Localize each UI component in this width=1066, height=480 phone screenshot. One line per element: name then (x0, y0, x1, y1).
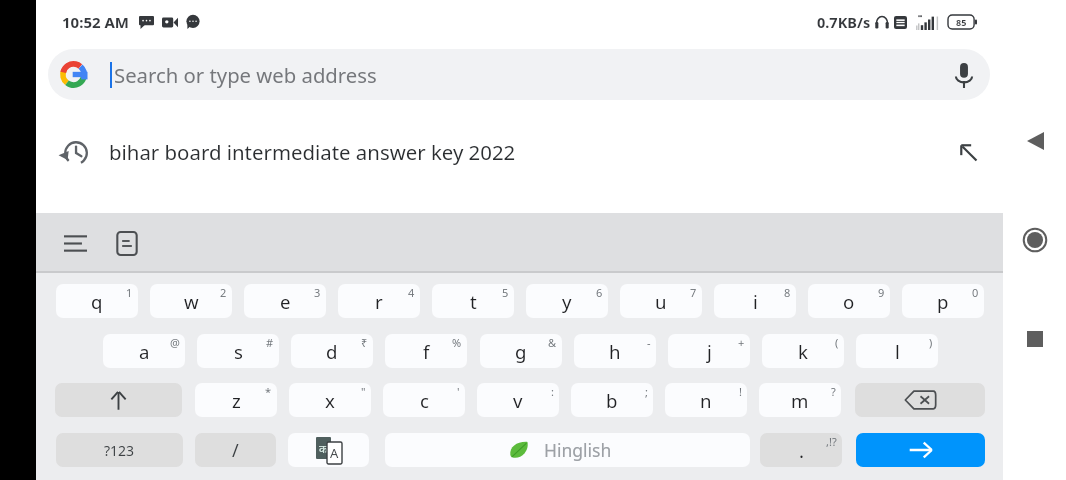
staticText: 9 (878, 285, 885, 300)
button[interactable]: Use this suggestion (951, 135, 985, 169)
button[interactable]: j (668, 334, 750, 368)
button[interactable]: x (289, 383, 371, 417)
staticText: h (609, 339, 621, 364)
button[interactable]: p (902, 284, 984, 318)
staticText: i (753, 289, 758, 314)
staticText: 5 (502, 285, 509, 300)
staticText: p (937, 289, 949, 314)
button[interactable]: d (291, 334, 373, 368)
staticText: b (606, 388, 618, 413)
staticText: ? (831, 384, 836, 399)
staticText: c (420, 388, 429, 413)
staticText: 0.7KB/s (817, 12, 871, 32)
button[interactable]: bihar board intermediate answer key 2022 (36, 116, 1003, 188)
button[interactable]: a (103, 334, 185, 368)
button[interactable]: Keyboard menu (57, 225, 93, 261)
staticText: 85 (956, 16, 967, 28)
staticText: 3 (314, 285, 321, 300)
staticText: क (319, 441, 328, 456)
staticText: d (326, 339, 338, 364)
button[interactable]: w (150, 284, 232, 318)
button[interactable]: f (385, 334, 467, 368)
button[interactable]: Voice search (941, 52, 987, 98)
button[interactable]: r (338, 284, 420, 318)
staticText: bihar board intermediate answer key 2022 (109, 138, 516, 166)
button[interactable]: / (195, 433, 276, 467)
button[interactable]: Shift (55, 383, 182, 417)
button[interactable]: h (574, 334, 656, 368)
staticText: m (791, 388, 809, 413)
staticText: & (548, 335, 557, 350)
staticText: / (232, 438, 239, 463)
staticText: r (375, 289, 383, 314)
staticText: ,!? (826, 434, 837, 449)
staticText: x (325, 388, 335, 413)
button[interactable]: m (759, 383, 841, 417)
button[interactable]: q (56, 284, 138, 318)
staticText: ' (457, 384, 460, 399)
staticText: : (551, 384, 554, 399)
staticText: u (655, 289, 667, 314)
staticText: 0 (972, 285, 979, 300)
button[interactable]: Space (385, 433, 750, 467)
button[interactable]: y (526, 284, 608, 318)
staticText: 2 (220, 285, 227, 300)
staticText: - (647, 335, 651, 350)
staticText: q (91, 289, 103, 314)
button[interactable]: ?123 (56, 433, 183, 467)
button[interactable]: v (477, 383, 559, 417)
button[interactable]: Search or type web address (48, 49, 990, 100)
staticText: a (139, 339, 150, 364)
staticText: % (452, 335, 462, 350)
staticText: ; (645, 384, 648, 399)
button[interactable]: Change language (288, 433, 369, 467)
button[interactable]: z (195, 383, 277, 417)
button[interactable]: g (480, 334, 562, 368)
staticText: l (895, 339, 900, 364)
staticText: A (330, 444, 339, 462)
staticText: ₹ (361, 335, 368, 350)
staticText: ( (835, 335, 839, 350)
button[interactable]: . (760, 433, 842, 467)
button[interactable]: Clipboard (109, 225, 145, 261)
staticText: 8 (784, 285, 791, 300)
staticText: k (798, 339, 808, 364)
staticText: ) (929, 335, 933, 350)
staticText: . (799, 438, 804, 463)
staticText: * (265, 384, 272, 399)
button[interactable]: Backspace (855, 383, 985, 417)
button[interactable]: Home (1007, 212, 1063, 268)
button[interactable]: l (856, 334, 938, 368)
staticText: v (513, 388, 523, 413)
button[interactable]: e (244, 284, 326, 318)
staticText: + (738, 335, 745, 350)
staticText: g (515, 339, 527, 364)
staticText: # (266, 335, 274, 350)
button[interactable]: i (714, 284, 796, 318)
staticText: y (562, 289, 572, 314)
button[interactable]: Back (1007, 113, 1063, 169)
staticText: n (700, 388, 712, 413)
button[interactable]: k (762, 334, 844, 368)
button[interactable]: o (808, 284, 890, 318)
staticText: t (470, 289, 477, 314)
staticText: Search or type web address (114, 61, 377, 89)
staticText: @ (170, 335, 180, 350)
staticText: Hinglish (544, 438, 612, 462)
staticText: z (232, 388, 241, 413)
staticText: 10:52 AM (62, 12, 129, 32)
staticText: f (423, 339, 430, 364)
button[interactable]: s (197, 334, 279, 368)
button[interactable]: b (571, 383, 653, 417)
button[interactable]: u (620, 284, 702, 318)
button[interactable]: c (383, 383, 465, 417)
staticText: 7 (690, 285, 697, 300)
staticText: 6 (596, 285, 603, 300)
button[interactable]: Enter (856, 433, 985, 467)
staticText: e (280, 289, 291, 314)
button[interactable]: Recents (1007, 311, 1063, 367)
staticText: " (361, 384, 366, 399)
button[interactable]: t (432, 284, 514, 318)
button[interactable]: n (665, 383, 747, 417)
staticText: 4 (408, 285, 415, 300)
